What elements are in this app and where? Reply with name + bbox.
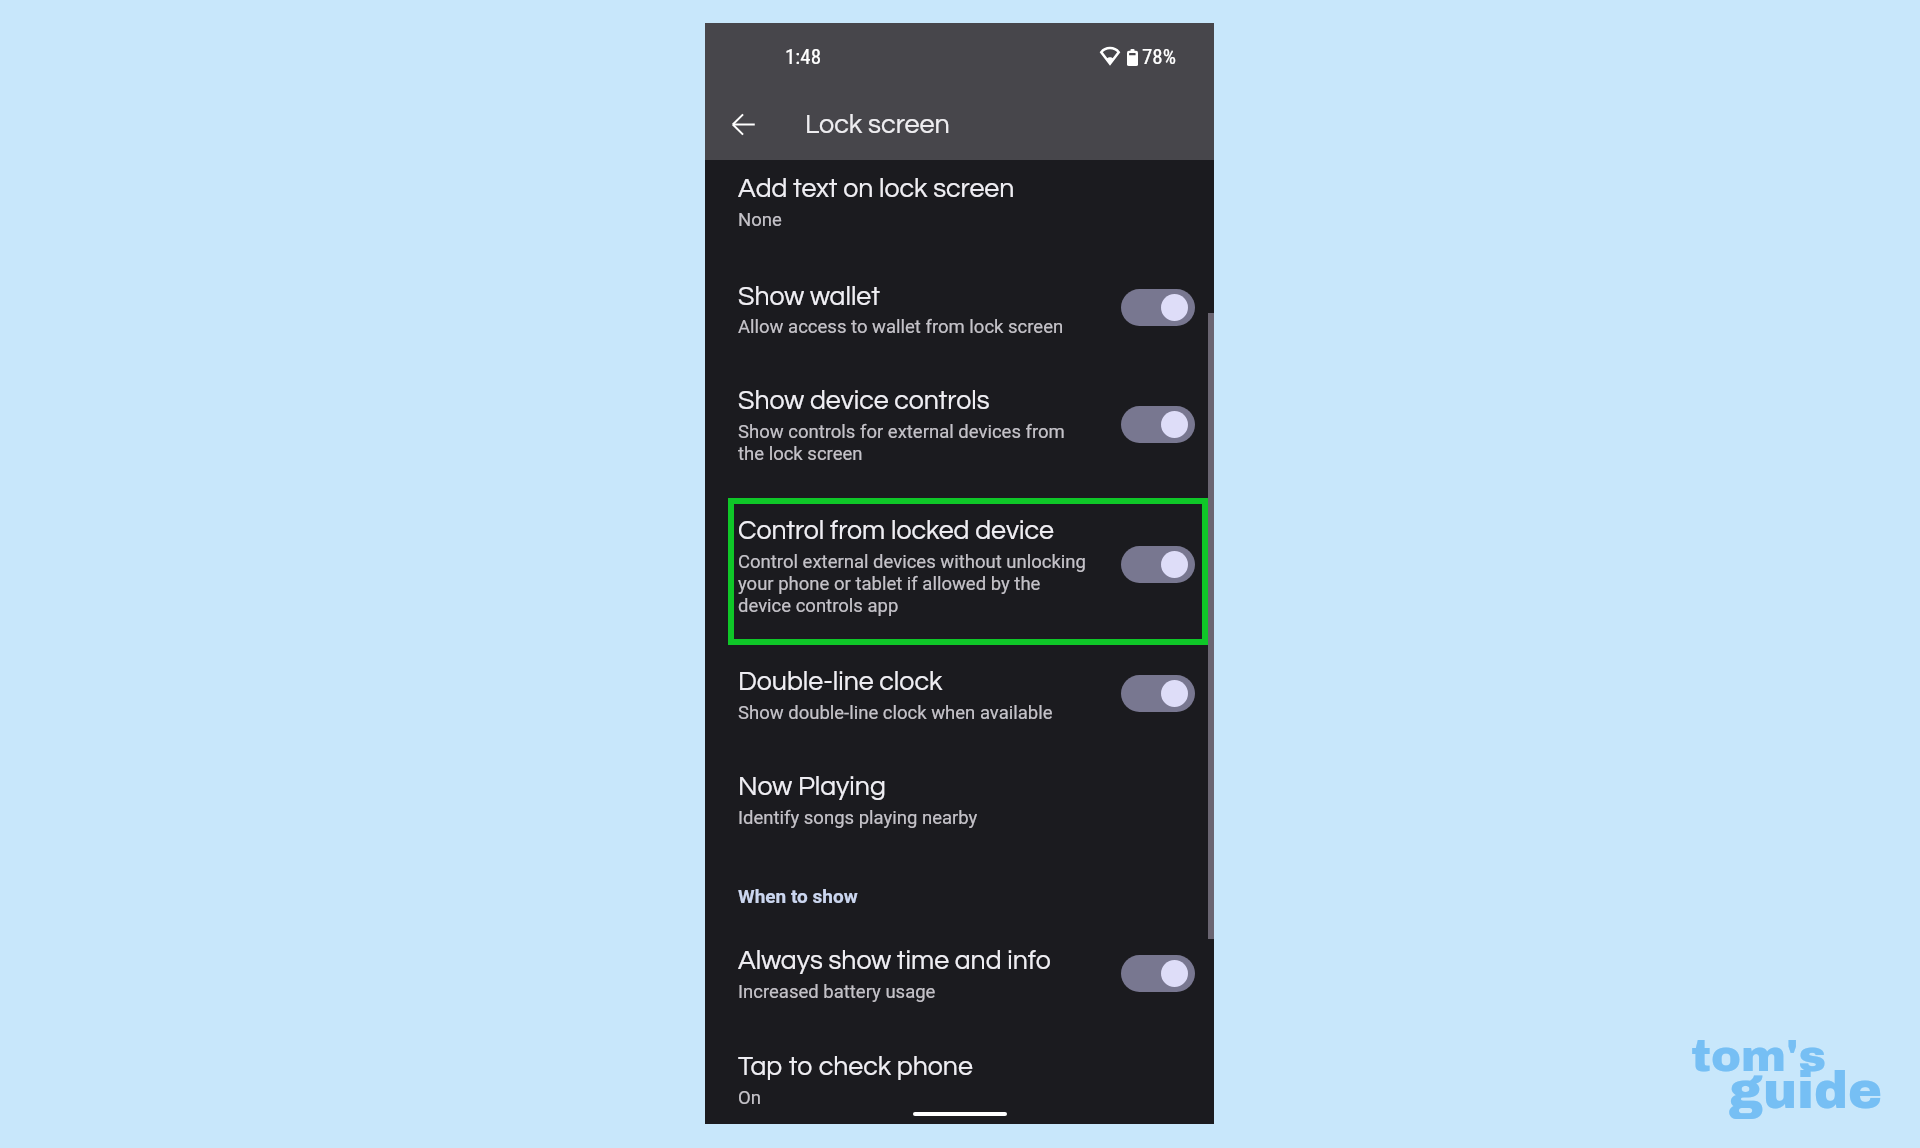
staticText: Double-line clock <box>738 668 943 696</box>
staticText: When to show <box>738 885 858 907</box>
staticText: Control from locked device <box>738 517 1054 545</box>
staticText: the lock screen <box>738 443 863 465</box>
staticText: Allow access to wallet from lock screen <box>738 316 1064 338</box>
button[interactable]: Show wallet, on <box>1121 289 1195 326</box>
button[interactable]: Control from locked device <box>705 498 1214 645</box>
staticText: Show wallet <box>738 283 880 311</box>
staticText: device controls app <box>738 595 899 617</box>
button[interactable]: Show device controls <box>705 388 1214 498</box>
staticText: Increased battery usage <box>738 981 936 1003</box>
button[interactable]: Add text on lock screen <box>705 173 1214 281</box>
staticText: guide <box>1729 1063 1883 1118</box>
button[interactable]: Tap to check phone <box>705 1036 1214 1124</box>
staticText: 1:48 <box>785 45 822 70</box>
staticText: tom's <box>1691 1031 1827 1080</box>
staticText: Identify songs playing nearby <box>738 807 978 829</box>
staticText: Now Playing <box>738 773 886 801</box>
staticText: Show double-line clock when available <box>738 702 1053 724</box>
staticText: Show device controls <box>738 387 990 415</box>
staticText: your phone or tablet if allowed by the <box>738 573 1041 595</box>
staticText: Tap to check phone <box>738 1053 973 1081</box>
button[interactable]: Show device controls, on <box>1121 406 1195 443</box>
button[interactable]: Now Playing <box>705 758 1214 878</box>
button[interactable]: Back <box>715 96 771 152</box>
button[interactable]: Control from locked device, on <box>1121 546 1195 583</box>
button[interactable]: Always show time and info <box>705 923 1214 1036</box>
button[interactable]: Show wallet <box>705 281 1214 388</box>
button[interactable]: Double-line clock <box>705 645 1214 758</box>
button[interactable]: Always show time and info, on <box>1121 955 1195 992</box>
staticText: None <box>738 209 782 231</box>
staticText: Show controls for external devices from <box>738 421 1065 443</box>
staticText: 78% <box>1142 45 1177 70</box>
staticText: On <box>738 1087 761 1109</box>
staticText: Always show time and info <box>738 947 1051 975</box>
staticText: Add text on lock screen <box>738 175 1015 203</box>
staticText: Lock screen <box>805 111 950 139</box>
button[interactable]: Double-line clock, on <box>1121 675 1195 712</box>
staticText: Control external devices without unlocki… <box>738 551 1086 573</box>
